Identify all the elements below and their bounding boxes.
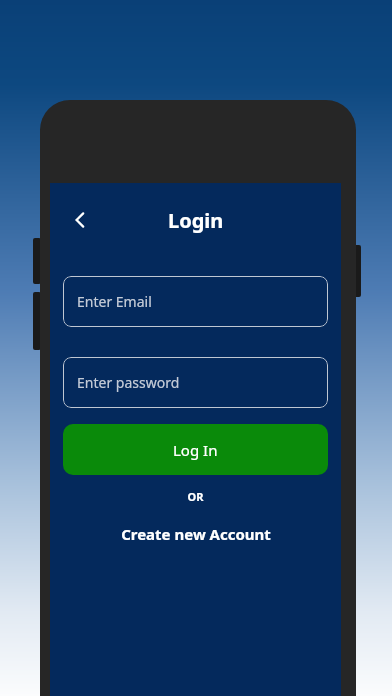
button[interactable]: Enter Email [63,276,328,327]
staticText: Enter password [77,373,180,392]
staticText: Enter Email [77,292,152,311]
staticText: OR [63,489,328,504]
staticText: Login [168,207,224,234]
button[interactable]: Log In [63,424,328,475]
button[interactable]: Enter password [63,357,328,408]
staticText: Create new Account [121,524,271,544]
button[interactable]: Create new Account [63,520,328,548]
staticText: Log In [173,440,218,460]
button[interactable]: Back [58,198,102,242]
